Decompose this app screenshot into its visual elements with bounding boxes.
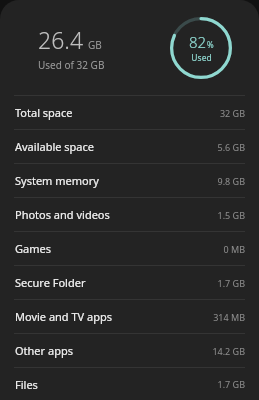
- staticText: 314 MB: [213, 311, 245, 323]
- staticText: GB: [88, 38, 102, 52]
- button[interactable]: Files: [0, 367, 259, 400]
- other: 82 percent used: [170, 17, 232, 79]
- button[interactable]: 26.4: [0, 0, 259, 95]
- staticText: 1.5 GB: [217, 209, 245, 221]
- staticText: Games: [15, 241, 51, 256]
- button[interactable]: Games: [0, 231, 259, 265]
- button[interactable]: Secure Folder: [0, 265, 259, 299]
- button[interactable]: Available space: [0, 129, 259, 163]
- button[interactable]: Total space: [0, 95, 259, 129]
- staticText: Files: [15, 377, 38, 392]
- staticText: 26.4: [38, 24, 84, 55]
- staticText: 1.7 GB: [217, 378, 245, 390]
- staticText: Movie and TV apps: [15, 309, 113, 324]
- button[interactable]: Movie and TV apps: [0, 299, 259, 333]
- staticText: Used: [191, 52, 212, 64]
- staticText: Other apps: [15, 343, 73, 358]
- staticText: 82: [189, 32, 207, 52]
- staticText: 1.7 GB: [217, 277, 245, 289]
- staticText: 9.8 GB: [217, 175, 245, 187]
- staticText: 0 MB: [223, 243, 245, 255]
- staticText: Used of 32 GB: [38, 58, 105, 72]
- staticText: 14.2 GB: [212, 345, 245, 357]
- staticText: Photos and videos: [15, 207, 110, 222]
- staticText: System memory: [15, 173, 99, 188]
- staticText: 5.6 GB: [217, 141, 245, 153]
- staticText: Total space: [15, 105, 73, 120]
- staticText: Available space: [15, 139, 94, 154]
- staticText: %: [207, 39, 214, 50]
- button[interactable]: Other apps: [0, 333, 259, 367]
- button[interactable]: Photos and videos: [0, 197, 259, 231]
- button[interactable]: System memory: [0, 163, 259, 197]
- staticText: Secure Folder: [15, 275, 86, 290]
- staticText: 32 GB: [219, 107, 245, 119]
